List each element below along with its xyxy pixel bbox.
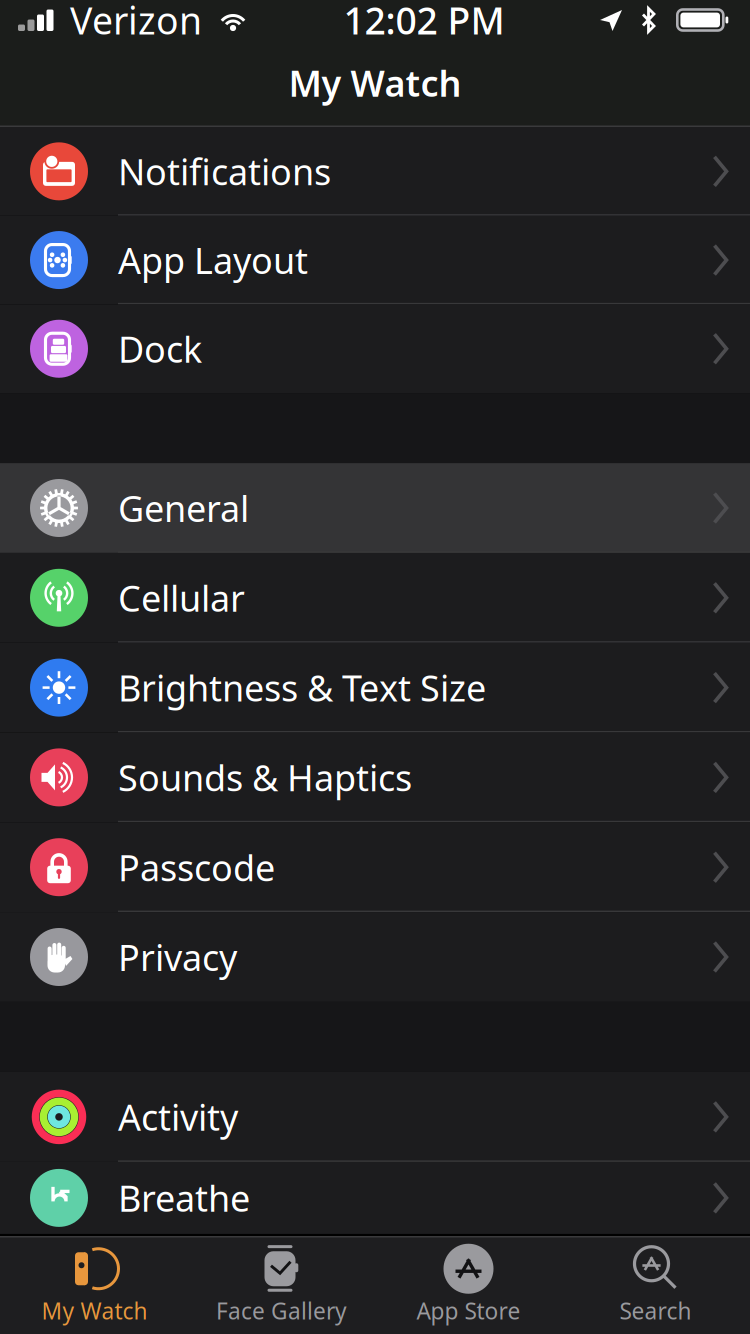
staticText: Notifications (118, 147, 331, 195)
button[interactable]: Privacy (0, 912, 750, 1002)
staticText: App Layout (118, 236, 308, 284)
button[interactable]: Face Gallery (188, 1237, 375, 1334)
button[interactable]: Cellular (0, 553, 750, 643)
staticText: Breathe (118, 1174, 250, 1222)
staticText: 12:02 PM (343, 0, 504, 45)
staticText: Passcode (118, 843, 275, 891)
staticText: Face Gallery (216, 1296, 347, 1326)
button[interactable]: App Store (375, 1237, 562, 1334)
staticText: Cellular (118, 574, 245, 622)
button[interactable]: Brightness & Text Size (0, 643, 750, 732)
button[interactable]: General (0, 463, 750, 553)
staticText: Privacy (118, 933, 237, 981)
button[interactable]: Notifications (0, 127, 750, 216)
staticText: My Watch (41, 1296, 147, 1326)
button[interactable]: App Layout (0, 216, 750, 304)
button[interactable]: Activity (0, 1072, 750, 1162)
staticText: Brightness & Text Size (118, 664, 486, 711)
staticText: App Store (416, 1296, 520, 1326)
staticText: Activity (118, 1093, 238, 1141)
button[interactable]: Passcode (0, 822, 750, 912)
staticText: Verizon (70, 0, 202, 45)
button[interactable]: Dock (0, 304, 750, 393)
staticText: Dock (118, 325, 202, 373)
staticText: General (118, 484, 249, 532)
staticText: Search (619, 1296, 691, 1326)
staticText: Sounds & Haptics (118, 753, 412, 801)
button[interactable]: Search (562, 1237, 749, 1334)
button[interactable]: My Watch (1, 1237, 188, 1334)
button[interactable]: Sounds & Haptics (0, 732, 750, 822)
staticText: My Watch (288, 59, 461, 107)
button[interactable]: Breathe (0, 1162, 750, 1234)
